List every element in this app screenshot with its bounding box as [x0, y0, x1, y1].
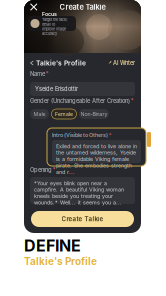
staticText: Male	[33, 111, 45, 117]
staticText: Talkie's Profile	[34, 59, 86, 67]
staticText: Female	[55, 111, 73, 117]
staticText: Non-Binary	[80, 111, 107, 117]
staticText: Create Talkie	[61, 215, 103, 223]
staticText: Create Talkie	[59, 2, 105, 11]
staticText: AI Writer	[113, 60, 135, 66]
staticText: *	[53, 166, 56, 173]
staticText: DEFINE	[24, 236, 81, 255]
staticText: *	[131, 97, 134, 104]
button[interactable]: Close	[28, 1, 39, 13]
staticText: improve image accuracy	[42, 27, 66, 36]
button[interactable]: Male	[30, 109, 49, 119]
button[interactable]: Create Talkie	[31, 211, 134, 227]
staticText: Target the face/detail to	[42, 17, 67, 27]
staticText: Talkie's Profile	[24, 255, 97, 267]
button[interactable]: Non-Binary	[79, 109, 109, 119]
staticText: *	[46, 70, 49, 77]
staticText: Opening	[30, 166, 52, 173]
staticText: Yseide Erisdottir	[35, 85, 78, 92]
button[interactable]: Female	[51, 109, 76, 119]
staticText: Gender (Unchangeable After Creation)	[30, 97, 130, 104]
staticText: Intro (Visible to Others)	[52, 132, 108, 138]
staticText: Name	[30, 70, 45, 77]
staticText: Focus	[42, 11, 57, 17]
staticText: *	[109, 132, 112, 138]
button[interactable]: AI Writer	[107, 60, 135, 66]
staticText: *Your eyes blink open near a campfire. A…	[34, 180, 124, 206]
staticText: Exiled and forced to live alone in the u…	[56, 143, 137, 175]
